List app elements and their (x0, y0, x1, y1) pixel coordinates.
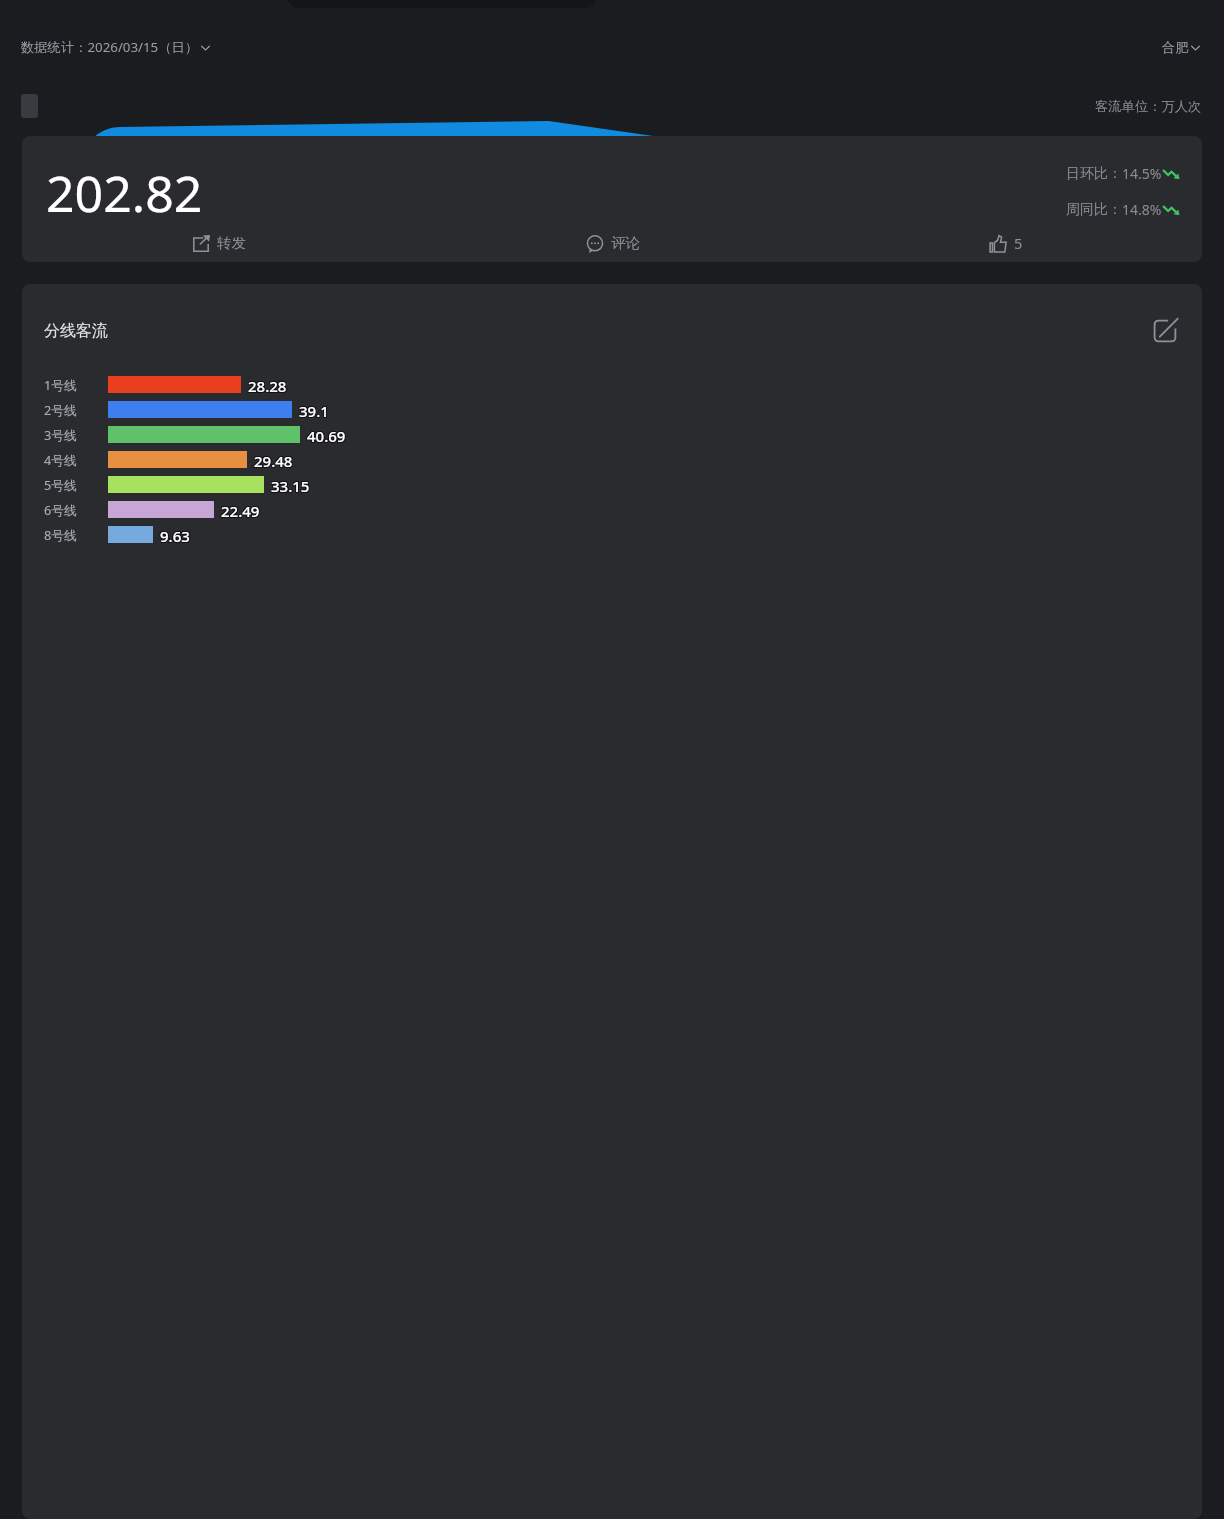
staticText: 9.63 (159, 527, 189, 544)
staticText: 22.49 (220, 501, 259, 518)
staticText: 40.69 (307, 426, 346, 443)
staticText: 39.1 (299, 401, 329, 418)
staticText: 33.15 (271, 477, 310, 494)
staticText: 39.1 (299, 402, 329, 419)
button[interactable]: 6号线 (22, 501, 1202, 518)
staticText: 22.49 (220, 502, 259, 519)
staticText: 合肥 (1162, 39, 1189, 56)
staticText: 9.63 (160, 526, 190, 543)
staticText: 40.69 (307, 425, 346, 442)
staticText: 39.1 (298, 402, 328, 419)
staticText: 29.48 (254, 451, 293, 468)
button[interactable]: 4号线 (22, 451, 1202, 468)
button[interactable]: 转发 (22, 226, 416, 262)
staticText: 33.15 (270, 475, 309, 492)
staticText: 40.69 (308, 426, 347, 443)
staticText: 29.48 (255, 450, 294, 467)
staticText: 8号线 (44, 526, 77, 543)
staticText: 40.69 (306, 426, 345, 443)
button[interactable]: 8号线 (22, 526, 1202, 543)
staticText: 202.82 (46, 159, 203, 227)
staticText: 28.28 (248, 375, 287, 392)
staticText: 22.49 (221, 500, 260, 517)
staticText: 29.48 (253, 450, 292, 467)
staticText: 28.28 (248, 377, 287, 394)
staticText: 22.49 (220, 500, 259, 517)
staticText: 9.63 (160, 525, 190, 542)
staticText: 9.63 (161, 527, 191, 544)
staticText: 9.63 (159, 525, 189, 542)
staticText: 2号线 (44, 401, 77, 418)
button[interactable]: 202.82 (22, 136, 1202, 262)
staticText: 28.28 (249, 376, 288, 393)
staticText: 22.49 (222, 501, 261, 518)
staticText: 3号线 (44, 426, 77, 443)
staticText: 22.49 (222, 502, 261, 519)
staticText: 5号线 (44, 476, 77, 493)
button[interactable]: 2号线 (22, 401, 1202, 418)
button[interactable]: Edit (1148, 314, 1182, 348)
staticText: 1号线 (44, 376, 77, 393)
staticText: 33.15 (272, 475, 311, 492)
staticText: 39.1 (300, 400, 330, 417)
button[interactable]: 评论 (416, 226, 809, 262)
staticText: 33.15 (270, 477, 309, 494)
staticText: 9.63 (159, 526, 189, 543)
staticText: 40.69 (308, 427, 347, 444)
staticText: 40.69 (306, 427, 345, 444)
staticText: 29.48 (253, 451, 292, 468)
staticText: 29.48 (253, 452, 292, 469)
staticText: 日环比： (1066, 165, 1122, 183)
staticText: 转发 (217, 234, 246, 252)
staticText: 22.49 (222, 500, 261, 517)
staticText: 39.1 (300, 402, 330, 419)
staticText: 28.28 (247, 377, 286, 394)
staticText: 40.69 (307, 427, 346, 444)
staticText: 22.49 (221, 501, 260, 518)
staticText: 33.15 (271, 476, 310, 493)
button[interactable]: 1号线 (22, 376, 1202, 393)
staticText: 28.28 (249, 377, 288, 394)
staticText: 40.69 (308, 425, 347, 442)
staticText: 9.63 (161, 526, 191, 543)
staticText: 14.5% (1122, 164, 1162, 183)
staticText: 29.48 (255, 452, 294, 469)
staticText: 5 (1014, 233, 1023, 253)
button[interactable]: 数据统计：2026/03/15（日） (21, 38, 212, 56)
staticText: 29.48 (255, 451, 294, 468)
staticText: 39.1 (300, 401, 330, 418)
staticText: 4号线 (44, 451, 77, 468)
staticText: 33.15 (272, 476, 311, 493)
staticText: 28.28 (247, 375, 286, 392)
staticText: 28.28 (249, 375, 288, 392)
staticText: 39.1 (298, 401, 328, 418)
staticText: 数据统计：2026/03/15（日） (21, 38, 199, 56)
staticText: 评论 (611, 234, 640, 252)
staticText: 客流单位：万人次 (1095, 98, 1202, 115)
staticText: 40.69 (306, 425, 345, 442)
staticText: 29.48 (254, 452, 293, 469)
staticText: 6号线 (44, 501, 77, 518)
button[interactable]: 3号线 (22, 426, 1202, 443)
staticText: 33.15 (271, 475, 310, 492)
staticText: 39.1 (299, 400, 329, 417)
staticText: 33.15 (272, 477, 311, 494)
staticText: 33.15 (270, 476, 309, 493)
staticText: 14.8% (1122, 200, 1162, 219)
button[interactable]: 5 (809, 226, 1202, 262)
staticText: 周同比： (1066, 201, 1122, 219)
staticText: 39.1 (298, 400, 328, 417)
staticText: 9.63 (160, 527, 190, 544)
staticText: 29.48 (254, 450, 293, 467)
staticText: 22.49 (221, 502, 260, 519)
staticText: 9.63 (161, 525, 191, 542)
button[interactable]: 5号线 (22, 476, 1202, 493)
staticText: 28.28 (247, 376, 286, 393)
staticText: 分线客流 (44, 321, 108, 341)
button[interactable]: 合肥 (1162, 39, 1202, 56)
staticText: 28.28 (248, 376, 287, 393)
